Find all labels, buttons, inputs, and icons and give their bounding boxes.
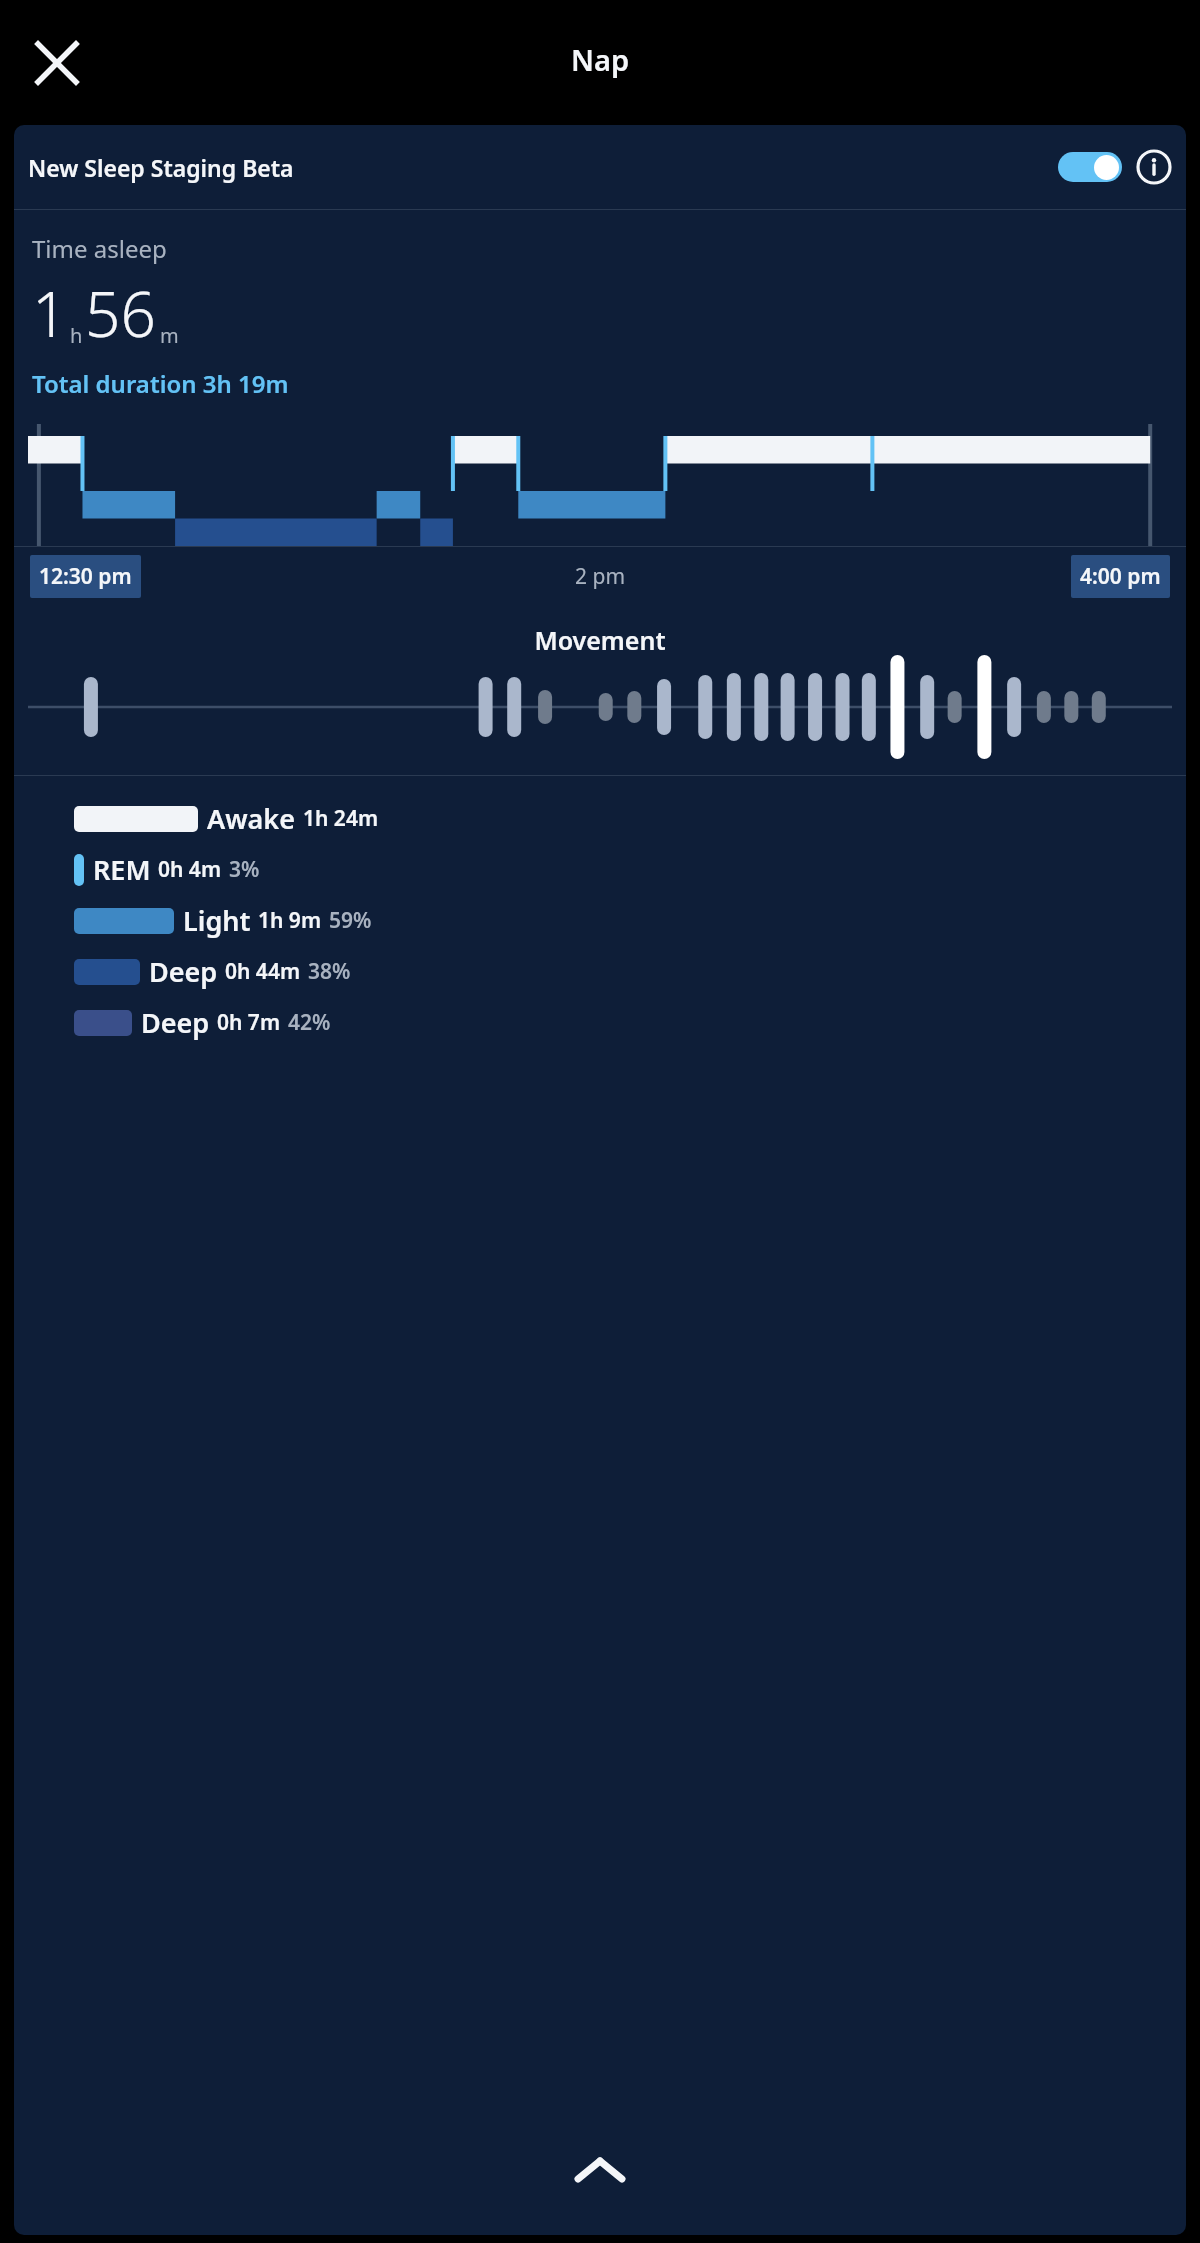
staticText: REM — [93, 851, 151, 888]
staticText: Light — [183, 902, 251, 939]
staticText: h — [70, 322, 83, 349]
staticText: Movement — [14, 623, 1186, 657]
staticText: 1 — [32, 271, 68, 355]
staticText: 0h 44m — [225, 957, 301, 986]
button[interactable]: Deep — [32, 1004, 1172, 1041]
staticText: Awake — [207, 800, 296, 837]
staticText: New Sleep Staging Beta — [28, 152, 1058, 183]
staticText: 1h 9m — [258, 906, 322, 935]
staticText: 2 pm — [575, 562, 626, 591]
staticText: 38% — [308, 957, 351, 986]
staticText: 56 — [85, 271, 156, 355]
staticText: 42% — [288, 1008, 331, 1037]
button[interactable]: Deep — [32, 953, 1172, 990]
button[interactable]: Light — [32, 902, 1172, 939]
staticText: Total duration 3h 19m — [32, 367, 289, 400]
staticText: 4:00 pm — [1080, 562, 1161, 591]
staticText: 0h 4m — [158, 855, 222, 884]
staticText: 59% — [329, 906, 372, 935]
staticText: Time asleep — [32, 232, 167, 265]
button[interactable]: Awake — [32, 800, 1172, 837]
button[interactable]: Close — [22, 28, 92, 98]
staticText: m — [160, 322, 179, 349]
staticText: 1h 24m — [303, 804, 379, 833]
staticText: 12:30 pm — [39, 562, 132, 591]
staticText: Deep — [149, 953, 218, 990]
staticText: 3% — [229, 855, 260, 884]
button[interactable]: Information — [1136, 149, 1172, 185]
button[interactable]: REM — [32, 851, 1172, 888]
button[interactable]: New Sleep Staging Beta toggle — [1058, 152, 1122, 182]
staticText: Deep — [141, 1004, 210, 1041]
button[interactable]: Collapse — [14, 2125, 1186, 2215]
staticText: 0h 7m — [217, 1008, 281, 1037]
staticText: Nap — [571, 40, 630, 79]
